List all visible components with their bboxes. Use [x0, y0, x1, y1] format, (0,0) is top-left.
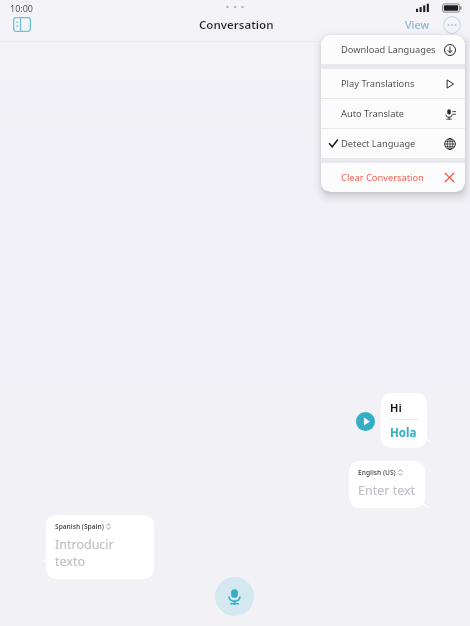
button[interactable]: Play Translations [321, 69, 465, 98]
staticText: Hi [390, 400, 402, 415]
button[interactable]: English (US) [349, 461, 425, 508]
button[interactable]: Play translation [353, 409, 377, 433]
staticText: Play Translations [341, 77, 415, 90]
button[interactable]: Clear Conversation [321, 163, 465, 192]
button[interactable]: Start listening [215, 577, 254, 616]
button[interactable]: Hi [381, 393, 427, 448]
button[interactable]: Detect Language [321, 129, 465, 158]
button[interactable]: Auto Translate [321, 99, 465, 128]
staticText: Spanish (Spain) [55, 522, 104, 531]
button[interactable]: More options [442, 15, 462, 35]
staticText: View [405, 17, 430, 32]
button[interactable]: Spanish (Spain) [46, 515, 154, 579]
staticText: Clear Conversation [341, 171, 424, 184]
staticText: Conversation [199, 17, 274, 33]
button[interactable]: View [401, 14, 434, 35]
staticText: English (US) [358, 468, 396, 477]
staticText: 10:00 [10, 2, 34, 14]
button[interactable]: Download Languages [321, 35, 465, 64]
staticText: Hola [390, 425, 417, 441]
staticText: Detect Language [341, 137, 416, 150]
staticText: Introducir texto [55, 536, 145, 570]
staticText: Download Languages [341, 43, 436, 56]
staticText: Auto Translate [341, 107, 405, 120]
staticText: Enter text [358, 482, 416, 499]
button[interactable]: Show sidebar [6, 8, 38, 40]
